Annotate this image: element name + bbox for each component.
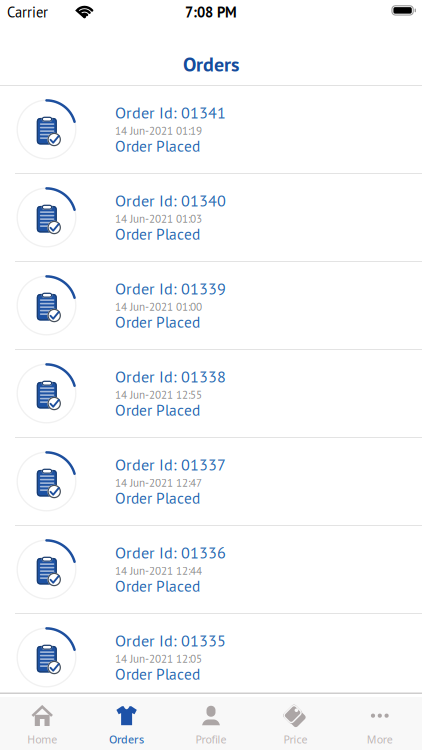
staticText: Order Placed (115, 576, 200, 596)
staticText: 14 Jun-2021 12:44 (115, 563, 202, 578)
staticText: Order Id: 01341 (115, 102, 226, 123)
staticText: Order Id: 01340 (115, 190, 226, 211)
button[interactable]: Price (253, 694, 338, 746)
button[interactable]: Order Id: 01340 (0, 174, 422, 262)
staticText: Order Placed (115, 224, 200, 244)
staticText: Order Id: 01338 (115, 366, 226, 387)
staticText: Order Id: 01335 (115, 630, 226, 651)
button[interactable]: Order Id: 01341 (0, 86, 422, 174)
staticText: Order Placed (115, 400, 200, 420)
button[interactable]: Order Id: 01337 (0, 438, 422, 526)
staticText: More (367, 732, 393, 746)
staticText: Orders (109, 732, 144, 746)
staticText: Carrier (7, 3, 48, 21)
staticText: Orders (183, 51, 239, 77)
staticText: Order Placed (115, 312, 200, 332)
staticText: 7:08 PM (185, 3, 237, 21)
button[interactable]: Home (0, 694, 84, 746)
staticText: Home (27, 732, 57, 746)
button[interactable]: Order Id: 01336 (0, 526, 422, 614)
button[interactable]: Orders (84, 694, 169, 746)
staticText: Order Id: 01337 (115, 454, 226, 475)
staticText: 14 Jun-2021 12:55 (115, 387, 202, 402)
button[interactable]: Order Id: 01338 (0, 350, 422, 438)
staticText: 14 Jun-2021 01:03 (115, 211, 202, 226)
staticText: 14 Jun-2021 12:05 (115, 651, 202, 666)
staticText: 14 Jun-2021 12:47 (115, 475, 202, 490)
staticText: Price (283, 732, 307, 746)
staticText: Order Placed (115, 136, 200, 156)
button[interactable]: Order Id: 01335 (0, 614, 422, 702)
staticText: Order Placed (115, 664, 200, 684)
button[interactable]: Order Id: 01339 (0, 262, 422, 350)
button[interactable]: More (338, 694, 422, 746)
staticText: Order Id: 01336 (115, 542, 226, 563)
staticText: Order Id: 01339 (115, 278, 226, 299)
button[interactable]: Profile (169, 694, 253, 746)
staticText: 14 Jun-2021 01:00 (115, 299, 202, 314)
staticText: 14 Jun-2021 01:19 (115, 123, 202, 138)
staticText: Profile (195, 732, 226, 746)
staticText: Order Placed (115, 488, 200, 508)
